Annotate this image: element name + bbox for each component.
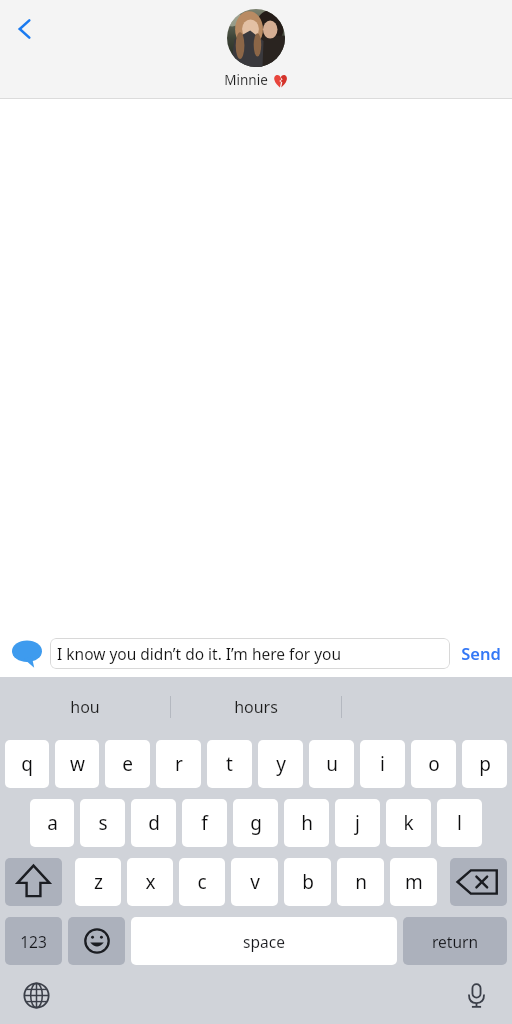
button[interactable]: o [411,740,456,788]
staticText: t [226,751,233,777]
staticText: q [21,751,33,777]
staticText: m [405,869,423,895]
button[interactable]: m [390,858,437,906]
button[interactable]: w [55,740,99,788]
staticText: return [432,931,478,952]
button[interactable]: hou [0,677,170,736]
button[interactable]: Shift [5,858,62,906]
button[interactable]: return [403,917,507,965]
staticText: I know you didn’t do it. I’m here for yo… [57,643,342,664]
staticText: 123 [20,931,47,952]
button[interactable]: l [437,799,482,847]
button[interactable]: p [462,740,507,788]
staticText: Minnie [224,71,268,89]
button[interactable]: s [80,799,125,847]
staticText: g [250,810,262,836]
button[interactable]: I know you didn’t do it. I’m here for yo… [50,638,450,669]
staticText: a [47,810,58,836]
staticText: d [148,810,160,836]
button[interactable]: Emoji [68,917,125,965]
staticText: l [457,810,462,836]
button[interactable]: x [127,858,173,906]
staticText: hours [234,696,278,718]
button[interactable]: k [386,799,431,847]
button[interactable]: Dictation [454,973,498,1017]
staticText: j [355,810,360,836]
staticText: h [301,810,313,836]
staticText: x [145,869,156,895]
button[interactable]: hours [171,677,341,736]
staticText: s [98,810,108,836]
button[interactable]: r [156,740,201,788]
button[interactable]: n [337,858,384,906]
staticText: p [479,751,491,777]
button[interactable]: Apps [8,634,46,672]
button[interactable]: t [207,740,252,788]
button[interactable]: space [131,917,397,965]
button[interactable]: b [284,858,331,906]
staticText: Send [461,642,501,664]
staticText: r [175,751,183,777]
staticText: u [326,751,338,777]
staticText: hou [70,696,100,718]
staticText: o [428,751,440,777]
staticText: k [403,810,414,836]
button[interactable]: d [131,799,176,847]
button[interactable]: u [309,740,354,788]
staticText: space [243,931,285,952]
staticText: i [380,751,385,777]
button[interactable]: f [182,799,227,847]
staticText: n [355,869,367,895]
button[interactable]: i [360,740,405,788]
button[interactable]: Change keyboard [14,973,58,1017]
staticText: f [201,810,208,836]
staticText: y [276,751,286,777]
button[interactable]: Delete [450,858,507,906]
button[interactable]: a [30,799,74,847]
button[interactable]: Back [2,6,48,52]
staticText: v [250,869,260,895]
button[interactable]: 123 [5,917,62,965]
button[interactable]: Send [450,629,512,677]
button[interactable]: Minnie [224,9,288,89]
button[interactable]: z [75,858,121,906]
staticText: z [94,869,103,895]
staticText: w [70,751,85,777]
button[interactable]: q [5,740,49,788]
button[interactable]: v [231,858,278,906]
button[interactable]: h [284,799,329,847]
staticText: e [122,751,133,777]
staticText: b [302,869,314,895]
staticText: c [197,869,207,895]
button[interactable]: e [105,740,150,788]
button[interactable]: c [179,858,225,906]
button[interactable]: g [233,799,278,847]
button[interactable]: y [258,740,303,788]
button[interactable]: j [335,799,380,847]
